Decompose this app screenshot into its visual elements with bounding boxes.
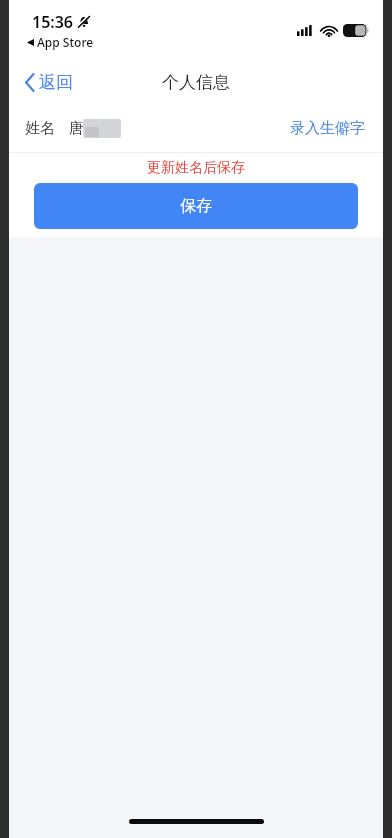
staticText: 个人信息	[162, 72, 230, 93]
button[interactable]: 录入生僻字	[288, 113, 367, 144]
staticText: 录入生僻字	[290, 119, 365, 138]
staticText: 返回	[39, 72, 73, 93]
other: Silent mode	[78, 16, 90, 28]
staticText: 姓名	[25, 119, 55, 138]
staticText: 15:36	[32, 11, 74, 33]
staticText: 唐	[69, 119, 84, 138]
staticText: 更新姓名后保存	[147, 159, 245, 177]
staticText: 保存	[180, 196, 212, 216]
button[interactable]: 保存	[34, 183, 358, 229]
button[interactable]: 返回	[19, 68, 79, 97]
staticText: App Store	[37, 34, 94, 50]
